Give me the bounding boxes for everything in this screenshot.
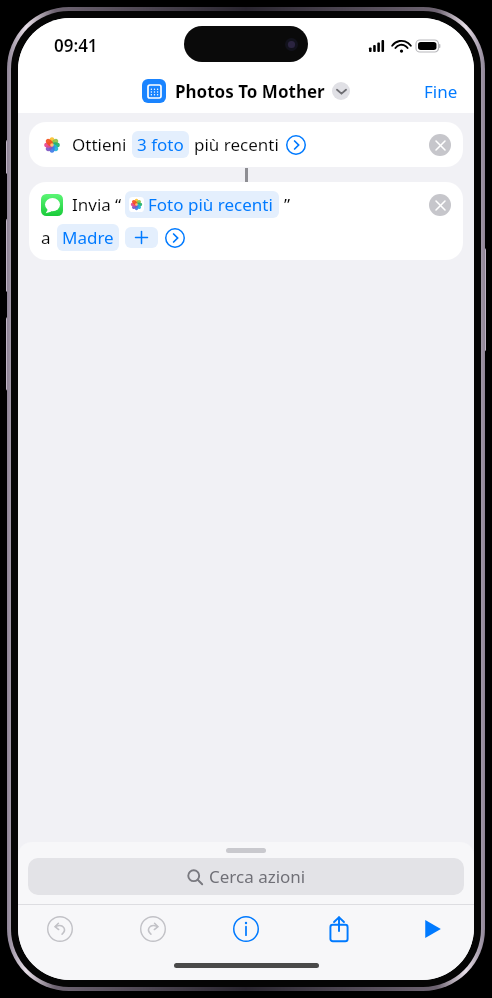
button[interactable]: Share: [317, 907, 361, 951]
button[interactable]: Photos To Mother: [142, 79, 350, 103]
staticText: Ottieni: [72, 133, 127, 156]
button[interactable]: Add recipient: [125, 227, 158, 248]
staticText: a: [41, 226, 51, 249]
button[interactable]: Show more: [286, 135, 306, 155]
button[interactable]: Madre: [57, 224, 119, 251]
staticText: “: [115, 193, 122, 216]
staticText: Fine: [424, 80, 458, 103]
button[interactable]: Ottieni: [29, 122, 463, 167]
button[interactable]: Invia: [29, 182, 463, 260]
button[interactable]: 3 foto: [132, 131, 189, 158]
staticText: Photos To Mother: [175, 80, 325, 103]
staticText: Madre: [62, 226, 114, 249]
button[interactable]: Delete action: [429, 134, 451, 156]
button[interactable]: Undo: [38, 907, 82, 951]
button[interactable]: Run shortcut: [410, 907, 454, 951]
staticText: 3 foto: [137, 133, 184, 156]
button[interactable]: Cerca azioni: [28, 858, 464, 895]
staticText: più recenti: [194, 133, 279, 156]
button[interactable]: Foto più recenti: [125, 191, 279, 218]
staticText: ”: [284, 193, 291, 216]
button[interactable]: Redo: [131, 907, 175, 951]
other: Show shortcut options: [332, 82, 350, 100]
button[interactable]: Delete action: [429, 194, 451, 216]
staticText: Foto più recenti: [148, 193, 273, 216]
staticText: Cerca azioni: [209, 865, 306, 888]
button[interactable]: Show more: [165, 228, 185, 248]
staticText: 09:41: [54, 34, 98, 57]
button[interactable]: Fine: [408, 72, 474, 111]
button[interactable]: Shortcut details: [224, 907, 268, 951]
staticText: Invia: [72, 193, 111, 216]
